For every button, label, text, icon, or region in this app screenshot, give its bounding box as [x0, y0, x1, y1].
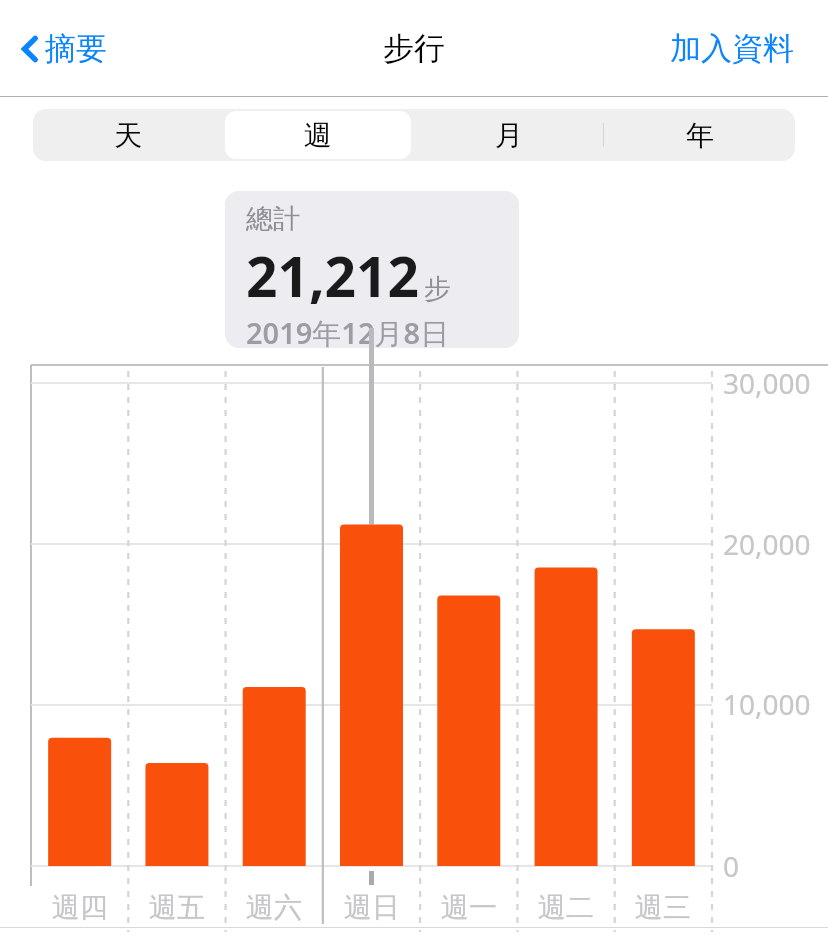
staticText: 週三: [635, 890, 691, 925]
staticText: 30,000: [723, 364, 811, 402]
staticText: 週二: [538, 890, 594, 925]
button[interactable]: 週五: [129, 885, 225, 929]
button[interactable]: 加入資料: [670, 29, 794, 68]
staticText: 天: [114, 118, 142, 153]
staticText: 週: [304, 118, 332, 153]
staticText: 週一: [441, 890, 497, 925]
button[interactable]: 年: [606, 111, 793, 159]
button[interactable]: 週二: [518, 885, 614, 929]
button[interactable]: 週六: [226, 885, 322, 929]
button[interactable]: 月: [415, 111, 602, 159]
staticText: 2019年12月8日: [246, 313, 450, 348]
button[interactable]: 週一: [421, 885, 517, 929]
button[interactable]: 週四: [32, 885, 128, 929]
button[interactable]: 週: [225, 111, 411, 159]
staticText: 週日: [344, 890, 400, 925]
staticText: 週四: [52, 890, 108, 925]
staticText: 總計: [246, 202, 300, 236]
staticText: 步: [424, 272, 451, 306]
button[interactable]: 總計: [225, 191, 519, 348]
staticText: 年: [686, 118, 714, 153]
staticText: 週六: [246, 890, 302, 925]
staticText: 10,000: [723, 685, 811, 723]
button[interactable]: 週三: [615, 885, 711, 929]
button[interactable]: 天: [35, 111, 221, 159]
staticText: 週五: [149, 890, 205, 925]
staticText: 加入資料: [670, 29, 794, 68]
other: Back: [20, 33, 40, 65]
staticText: 21,212: [246, 238, 419, 313]
staticText: 0: [723, 847, 740, 885]
staticText: 摘要: [45, 29, 107, 68]
button[interactable]: 週日: [324, 885, 420, 929]
staticText: 20,000: [723, 525, 811, 563]
button[interactable]: Back: [20, 29, 107, 68]
staticText: 月: [495, 118, 523, 153]
staticText: 步行: [383, 29, 445, 68]
